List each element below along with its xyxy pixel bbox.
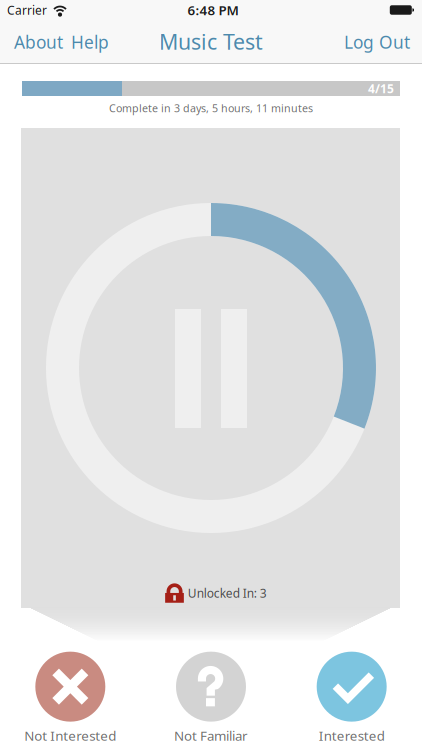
button[interactable]: Not Interested: [0, 652, 140, 744]
button[interactable]: Interested: [282, 652, 422, 744]
staticText: Complete in 3 days, 5 hours, 11 minutes: [109, 101, 313, 115]
staticText: Music Test: [159, 27, 263, 56]
button[interactable]: Help: [67, 21, 119, 61]
staticText: Not Interested: [24, 727, 116, 744]
staticText: Help: [71, 30, 109, 53]
button[interactable]: About: [0, 21, 67, 61]
staticText: Unlocked In: 3: [188, 585, 267, 601]
staticText: About: [14, 30, 63, 53]
staticText: Interested: [319, 727, 385, 744]
staticText: Carrier: [7, 2, 47, 18]
staticText: Log Out: [344, 30, 410, 53]
button[interactable]: Not Familiar: [141, 652, 281, 744]
staticText: Not Familiar: [174, 727, 248, 744]
staticText: 6:48 PM: [187, 1, 238, 19]
staticText: 4/15: [368, 80, 394, 96]
button[interactable]: Log Out: [334, 21, 422, 61]
